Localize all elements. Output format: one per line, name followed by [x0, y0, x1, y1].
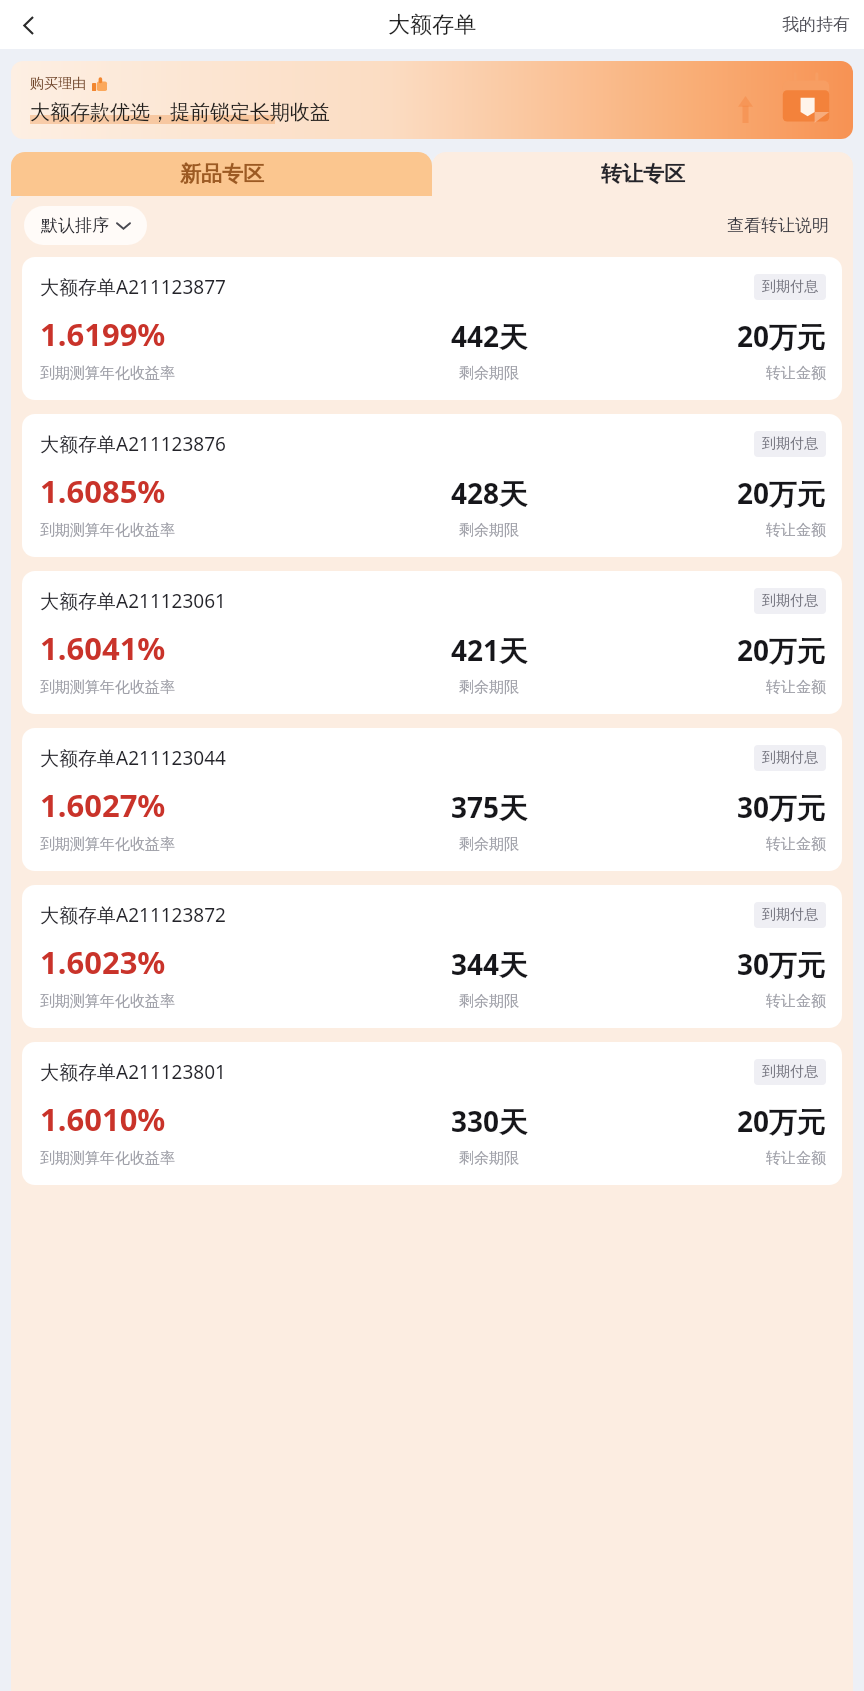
staticText: 1.6010%: [40, 1098, 166, 1140]
staticText: 到期付息: [762, 749, 818, 767]
staticText: 默认排序: [41, 215, 109, 236]
staticText: 到期付息: [762, 906, 818, 924]
button[interactable]: 大额存单A211123872: [22, 885, 842, 1028]
staticText: 新品专区: [180, 161, 264, 187]
staticText: 30万元: [737, 945, 826, 983]
staticText: 剩余期限: [459, 835, 519, 854]
staticText: 剩余期限: [459, 521, 519, 540]
button[interactable]: 大额存单A211123801: [22, 1042, 842, 1185]
button[interactable]: 返回: [4, 1, 52, 49]
staticText: 到期付息: [762, 592, 818, 610]
staticText: 到期测算年化收益率: [40, 521, 175, 540]
staticText: 到期测算年化收益率: [40, 1149, 175, 1168]
button[interactable]: 默认排序: [24, 206, 147, 245]
staticText: 转让金额: [766, 364, 826, 383]
staticText: 到期付息: [762, 435, 818, 453]
staticText: 1.6027%: [40, 784, 166, 826]
button[interactable]: 我的持有: [768, 5, 864, 44]
staticText: 到期测算年化收益率: [40, 364, 175, 383]
staticText: 剩余期限: [459, 1149, 519, 1168]
staticText: 大额存单A211123044: [40, 745, 754, 771]
staticText: 375天: [451, 788, 528, 826]
staticText: 到期测算年化收益率: [40, 678, 175, 697]
staticText: 344天: [451, 945, 528, 983]
staticText: 大额存单A211123801: [40, 1059, 754, 1085]
staticText: 转让专区: [601, 161, 685, 187]
button[interactable]: 购买理由: [11, 61, 853, 139]
staticText: 剩余期限: [459, 992, 519, 1011]
button[interactable]: 大额存单A211123876: [22, 414, 842, 557]
staticText: 大额存单A211123872: [40, 902, 754, 928]
staticText: 剩余期限: [459, 364, 519, 383]
staticText: 转让金额: [766, 992, 826, 1011]
staticText: 查看转让说明: [727, 215, 829, 236]
staticText: 大额存款优选，提前锁定长期收益: [30, 100, 330, 125]
staticText: 1.6085%: [40, 470, 166, 512]
staticText: 大额存单A211123876: [40, 431, 754, 457]
staticText: 1.6041%: [40, 627, 166, 669]
staticText: 转让金额: [766, 835, 826, 854]
button[interactable]: 查看转让说明: [722, 210, 834, 241]
staticText: 20万元: [737, 631, 826, 669]
button[interactable]: 大额存单A211123877: [22, 257, 842, 400]
staticText: 我的持有: [782, 14, 850, 35]
staticText: 30万元: [737, 788, 826, 826]
button[interactable]: 转让专区: [432, 152, 853, 196]
staticText: 428天: [451, 474, 528, 512]
staticText: 大额存单: [388, 11, 476, 39]
staticText: 到期付息: [762, 1063, 818, 1081]
staticText: 1.6199%: [40, 313, 166, 355]
staticText: 转让金额: [766, 678, 826, 697]
staticText: 购买理由: [30, 75, 86, 93]
staticText: 20万元: [737, 1102, 826, 1140]
staticText: 330天: [451, 1102, 528, 1140]
button[interactable]: 大额存单A211123044: [22, 728, 842, 871]
staticText: 大额存单A211123061: [40, 588, 754, 614]
staticText: 到期付息: [762, 278, 818, 296]
staticText: 1.6023%: [40, 941, 166, 983]
staticText: 到期测算年化收益率: [40, 835, 175, 854]
staticText: 转让金额: [766, 521, 826, 540]
staticText: 到期测算年化收益率: [40, 992, 175, 1011]
staticText: 421天: [451, 631, 528, 669]
staticText: 转让金额: [766, 1149, 826, 1168]
staticText: 大额存单A211123877: [40, 274, 754, 300]
button[interactable]: 新品专区: [11, 152, 432, 196]
staticText: 剩余期限: [459, 678, 519, 697]
staticText: 442天: [451, 317, 528, 355]
button[interactable]: 大额存单A211123061: [22, 571, 842, 714]
staticText: 20万元: [737, 317, 826, 355]
staticText: 20万元: [737, 474, 826, 512]
